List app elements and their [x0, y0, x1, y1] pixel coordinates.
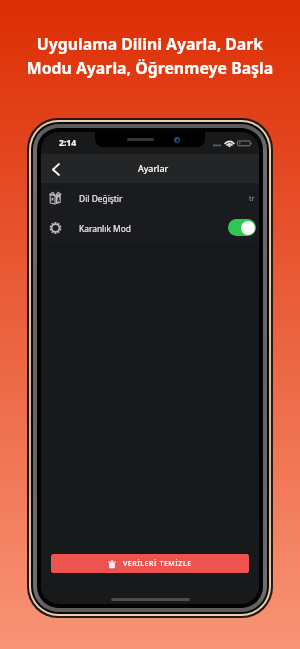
- staticText: Dil Değiştir: [79, 193, 123, 204]
- staticText: Uygulama Dilini Ayarla, Dark Modu Ayarla…: [0, 33, 300, 79]
- button[interactable]: VERİLERİ TEMİZLE: [51, 554, 249, 573]
- staticText: Karanlık Mod: [79, 223, 131, 234]
- staticText: 2:14: [59, 137, 77, 149]
- staticText: Ayarlar: [138, 162, 169, 174]
- button[interactable]: Back: [44, 157, 68, 181]
- staticText: VERİLERİ TEMİZLE: [123, 559, 192, 569]
- button[interactable]: Karanlık Mod: [41, 213, 259, 243]
- staticText: tr: [249, 193, 255, 203]
- button[interactable]: Dark mode toggle: [228, 219, 256, 236]
- button[interactable]: Dil Değiştir: [41, 183, 259, 213]
